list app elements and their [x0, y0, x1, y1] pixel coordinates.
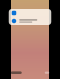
button[interactable] [9, 17, 51, 25]
button[interactable]: Live [11, 71, 22, 74]
button[interactable]: Info [45, 72, 49, 74]
button[interactable] [9, 9, 51, 17]
